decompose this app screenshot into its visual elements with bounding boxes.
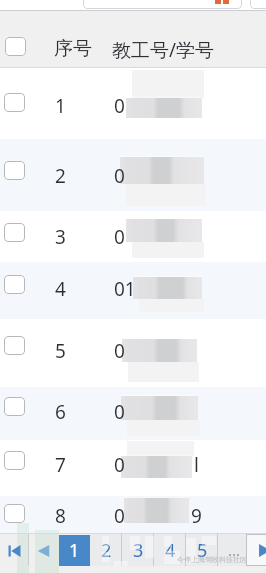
staticText: 01: [114, 276, 136, 302]
staticText: 2: [101, 538, 112, 563]
button[interactable]: [0, 11, 266, 68]
staticText: l: [194, 452, 199, 478]
button[interactable]: Select row: [4, 336, 25, 355]
button[interactable]: [0, 496, 266, 533]
staticText: 4: [165, 538, 176, 563]
button[interactable]: First page: [0, 535, 29, 566]
button[interactable]: [0, 387, 266, 440]
staticText: 教工号/学号: [112, 37, 215, 63]
staticText: 3: [133, 538, 144, 563]
staticText: 0: [114, 338, 125, 364]
staticText: 1: [55, 93, 66, 119]
button[interactable]: 5: [186, 534, 218, 566]
staticText: 0: [114, 503, 125, 529]
button[interactable]: Select row: [4, 504, 25, 523]
staticText: 8: [55, 503, 66, 529]
button[interactable]: [0, 262, 266, 319]
button[interactable]: [0, 211, 266, 262]
staticText: 1: [69, 538, 80, 563]
staticText: ...: [228, 540, 241, 560]
staticText: 今停上海驾牧科技社区: [177, 555, 247, 564]
button[interactable]: Select row: [5, 37, 26, 56]
button[interactable]: 3: [122, 534, 154, 566]
staticText: 0: [114, 224, 125, 250]
staticText: 5: [197, 538, 208, 563]
button[interactable]: Select row: [4, 451, 25, 470]
button[interactable]: Select row: [4, 397, 25, 416]
staticText: 序号: [54, 37, 92, 61]
button[interactable]: [0, 319, 266, 387]
staticText: 2: [55, 163, 66, 189]
staticText: 0: [114, 399, 125, 425]
staticText: 3: [55, 224, 66, 250]
staticText: 9: [191, 503, 202, 529]
button[interactable]: Select row: [4, 161, 25, 180]
button[interactable]: Next page: [246, 534, 266, 566]
button[interactable]: [0, 139, 266, 211]
staticText: 0: [114, 452, 125, 478]
staticText: 0: [114, 163, 125, 189]
staticText: 0: [114, 93, 125, 119]
button[interactable]: [0, 440, 266, 496]
staticText: 6: [55, 399, 66, 425]
staticText: 5: [55, 338, 66, 364]
button[interactable]: Previous page: [29, 535, 58, 566]
button[interactable]: Select row: [4, 223, 25, 242]
button[interactable]: 1: [59, 535, 90, 566]
button[interactable]: [0, 68, 266, 139]
button[interactable]: 4: [154, 534, 186, 566]
button[interactable]: Select row: [4, 275, 25, 294]
staticText: 7: [55, 452, 66, 478]
button[interactable]: Select row: [4, 93, 25, 112]
button[interactable]: 2: [90, 534, 122, 566]
button[interactable]: ...: [218, 534, 250, 566]
staticText: 4: [55, 276, 66, 302]
